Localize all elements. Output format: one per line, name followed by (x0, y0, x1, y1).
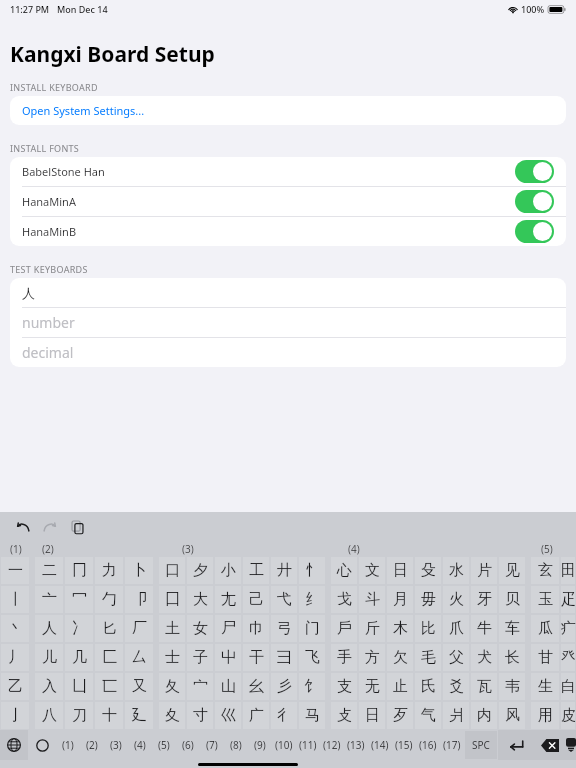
button[interactable]: 爪 (443, 615, 469, 642)
button[interactable]: 干 (243, 644, 269, 671)
button[interactable]: 尢 (215, 586, 241, 613)
button[interactable]: (12) (321, 731, 343, 759)
button[interactable]: 入 (35, 673, 63, 700)
button[interactable]: 贝 (499, 586, 525, 613)
button[interactable]: 戈 (331, 586, 357, 613)
button[interactable]: 丿 (1, 644, 29, 671)
button[interactable]: (8) (225, 731, 247, 759)
button[interactable]: Hide keyboard (566, 730, 576, 760)
button[interactable]: (9) (249, 731, 271, 759)
button[interactable]: (10) (273, 731, 295, 759)
button[interactable]: 长 (499, 644, 525, 671)
button[interactable]: (1) (57, 731, 79, 759)
button[interactable]: 牙 (471, 586, 497, 613)
button[interactable]: (16) (417, 731, 439, 759)
button[interactable]: 纟 (299, 586, 325, 613)
button[interactable]: 支 (331, 673, 357, 700)
button[interactable]: 十 (95, 702, 123, 729)
button[interactable]: decimal (10, 338, 566, 367)
button[interactable]: 土 (159, 615, 185, 642)
button[interactable]: 廴 (125, 702, 153, 729)
button[interactable]: (15) (393, 731, 415, 759)
button[interactable]: 疋 (561, 586, 575, 613)
button[interactable]: 彡 (271, 673, 297, 700)
button[interactable]: 日 (359, 702, 385, 729)
button[interactable]: 弋 (271, 586, 297, 613)
button[interactable]: 斤 (359, 615, 385, 642)
button[interactable]: 氏 (415, 673, 441, 700)
button[interactable]: 丨 (1, 586, 29, 613)
button[interactable]: 大 (187, 586, 213, 613)
button[interactable]: 门 (299, 615, 325, 642)
button[interactable]: 木 (387, 615, 413, 642)
button[interactable]: (14) (369, 731, 391, 759)
button[interactable]: 歹 (387, 702, 413, 729)
button[interactable]: SPC (465, 731, 497, 759)
button[interactable]: 匕 (95, 615, 123, 642)
button[interactable]: 皮 (561, 702, 575, 729)
button[interactable]: Toggle (515, 160, 554, 183)
button[interactable]: (5) (153, 731, 175, 759)
button[interactable]: 卜 (125, 557, 153, 584)
button[interactable]: 彐 (271, 644, 297, 671)
button[interactable]: 廾 (271, 557, 297, 584)
button[interactable]: 瓜 (531, 615, 559, 642)
button[interactable]: 夊 (159, 702, 185, 729)
button[interactable]: 瓦 (471, 673, 497, 700)
button[interactable]: (6) (177, 731, 199, 759)
button[interactable]: 山 (215, 673, 241, 700)
button[interactable]: 幺 (243, 673, 269, 700)
button[interactable]: 方 (359, 644, 385, 671)
button[interactable]: Redo (39, 516, 61, 538)
button[interactable]: 夕 (187, 557, 213, 584)
button[interactable]: 殳 (415, 557, 441, 584)
button[interactable]: 用 (531, 702, 559, 729)
button[interactable]: 欠 (387, 644, 413, 671)
button[interactable]: 又 (125, 673, 153, 700)
button[interactable]: 爿 (443, 702, 469, 729)
button[interactable]: Switch keyboard (0, 730, 28, 760)
button[interactable]: 日 (387, 557, 413, 584)
button[interactable]: Toggle (515, 220, 554, 243)
button[interactable]: (3) (105, 731, 127, 759)
button[interactable]: 广 (243, 702, 269, 729)
button[interactable]: 二 (35, 557, 63, 584)
button[interactable]: 屮 (215, 644, 241, 671)
button[interactable]: 厂 (125, 615, 153, 642)
button[interactable]: 飞 (299, 644, 325, 671)
button[interactable]: 甘 (531, 644, 559, 671)
button[interactable]: 生 (531, 673, 559, 700)
button[interactable]: 疒 (561, 615, 575, 642)
button[interactable]: Open System Settings... (10, 96, 566, 125)
button[interactable]: 比 (415, 615, 441, 642)
button[interactable]: 凵 (65, 673, 93, 700)
button[interactable]: 月 (387, 586, 413, 613)
button[interactable]: 乙 (1, 673, 29, 700)
button[interactable]: 匚 (95, 644, 123, 671)
button[interactable]: 儿 (35, 644, 63, 671)
button[interactable]: (7) (201, 731, 223, 759)
button[interactable]: 片 (471, 557, 497, 584)
button[interactable]: 尸 (215, 615, 241, 642)
button[interactable]: 韦 (499, 673, 525, 700)
button[interactable]: 弓 (271, 615, 297, 642)
button[interactable]: Delete (534, 730, 566, 760)
button[interactable]: 白 (561, 673, 575, 700)
button[interactable]: 厶 (125, 644, 153, 671)
button[interactable]: HanaMinB (10, 217, 566, 246)
button[interactable]: 玉 (531, 586, 559, 613)
button[interactable]: 火 (443, 586, 469, 613)
button[interactable]: 勹 (95, 586, 123, 613)
button[interactable]: 毋 (415, 586, 441, 613)
button[interactable]: 毛 (415, 644, 441, 671)
button[interactable]: 牛 (471, 615, 497, 642)
button[interactable]: 寸 (187, 702, 213, 729)
button[interactable]: (17) (441, 731, 463, 759)
button[interactable]: 父 (443, 644, 469, 671)
button[interactable]: 力 (95, 557, 123, 584)
button[interactable]: 巾 (243, 615, 269, 642)
button[interactable]: (13) (345, 731, 367, 759)
button[interactable]: 士 (159, 644, 185, 671)
button[interactable]: 爻 (443, 673, 469, 700)
button[interactable]: 无 (359, 673, 385, 700)
